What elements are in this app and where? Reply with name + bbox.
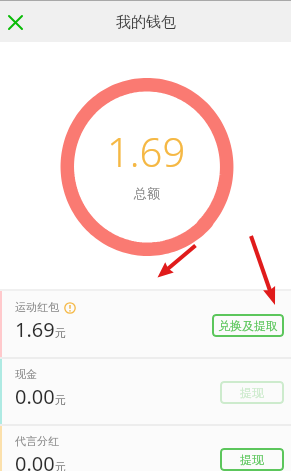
staticText: 兑换及提取 — [218, 318, 278, 333]
staticText: 1.69 — [107, 124, 186, 178]
staticText: 运动红包 — [15, 300, 59, 314]
button[interactable]: 兑换及提取 — [212, 314, 284, 337]
button[interactable]: Close — [0, 4, 33, 40]
button[interactable]: 现金 — [0, 359, 291, 424]
staticText: 0.00 — [15, 383, 55, 410]
staticText: 现金 — [15, 367, 37, 381]
staticText: 元 — [55, 393, 66, 407]
button[interactable]: 提现 — [220, 448, 284, 471]
button[interactable]: 代言分红 — [0, 426, 291, 471]
staticText: 元 — [55, 326, 66, 340]
staticText: 元 — [55, 460, 66, 471]
button[interactable]: 运动红包 — [0, 291, 291, 357]
button[interactable]: 提现 — [220, 381, 284, 404]
staticText: 提现 — [240, 385, 264, 400]
staticText: 提现 — [240, 452, 264, 467]
staticText: 代言分红 — [15, 434, 59, 448]
staticText: 1.69 — [15, 316, 55, 343]
staticText: 总额 — [134, 185, 160, 201]
staticText: 我的钱包 — [116, 13, 176, 32]
staticText: 0.00 — [15, 450, 55, 471]
